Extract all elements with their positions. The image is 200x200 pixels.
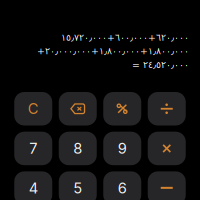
staticText: 6	[118, 179, 127, 197]
staticText: 9	[118, 140, 127, 157]
button[interactable]: Minus	[148, 171, 186, 200]
button[interactable]: 6	[103, 171, 141, 200]
button[interactable]: C	[14, 92, 52, 125]
button[interactable]: 4	[14, 171, 52, 200]
staticText: C	[28, 100, 39, 118]
button[interactable]: Delete	[59, 92, 97, 125]
staticText: ‭+٢٠٫٠٠٠٫٠٠٠+١٫٨٠٠٫٠٠٠+١٫٨٠٠٫٠٠٠‬	[37, 46, 189, 57]
staticText: ‭١٥٫٧٢٠٫٠٠٠+٦٠٠٫٠٠٠+٦٢٠٫٠٠٠‬	[61, 32, 189, 43]
staticText: ‭= ٢٤٫٥٢٠٫٠٠٠‬	[132, 59, 189, 70]
button[interactable]: Multiply	[148, 132, 186, 165]
staticText: 5	[73, 179, 82, 197]
button[interactable]: Percent	[103, 92, 141, 125]
staticText: 7	[29, 140, 37, 157]
staticText: 8	[73, 140, 82, 157]
staticText: 4	[29, 179, 38, 197]
button[interactable]: 8	[59, 132, 97, 165]
button[interactable]: 5	[59, 171, 97, 200]
button[interactable]: Divide	[148, 92, 186, 125]
button[interactable]: 7	[14, 132, 52, 165]
button[interactable]: 9	[103, 132, 141, 165]
